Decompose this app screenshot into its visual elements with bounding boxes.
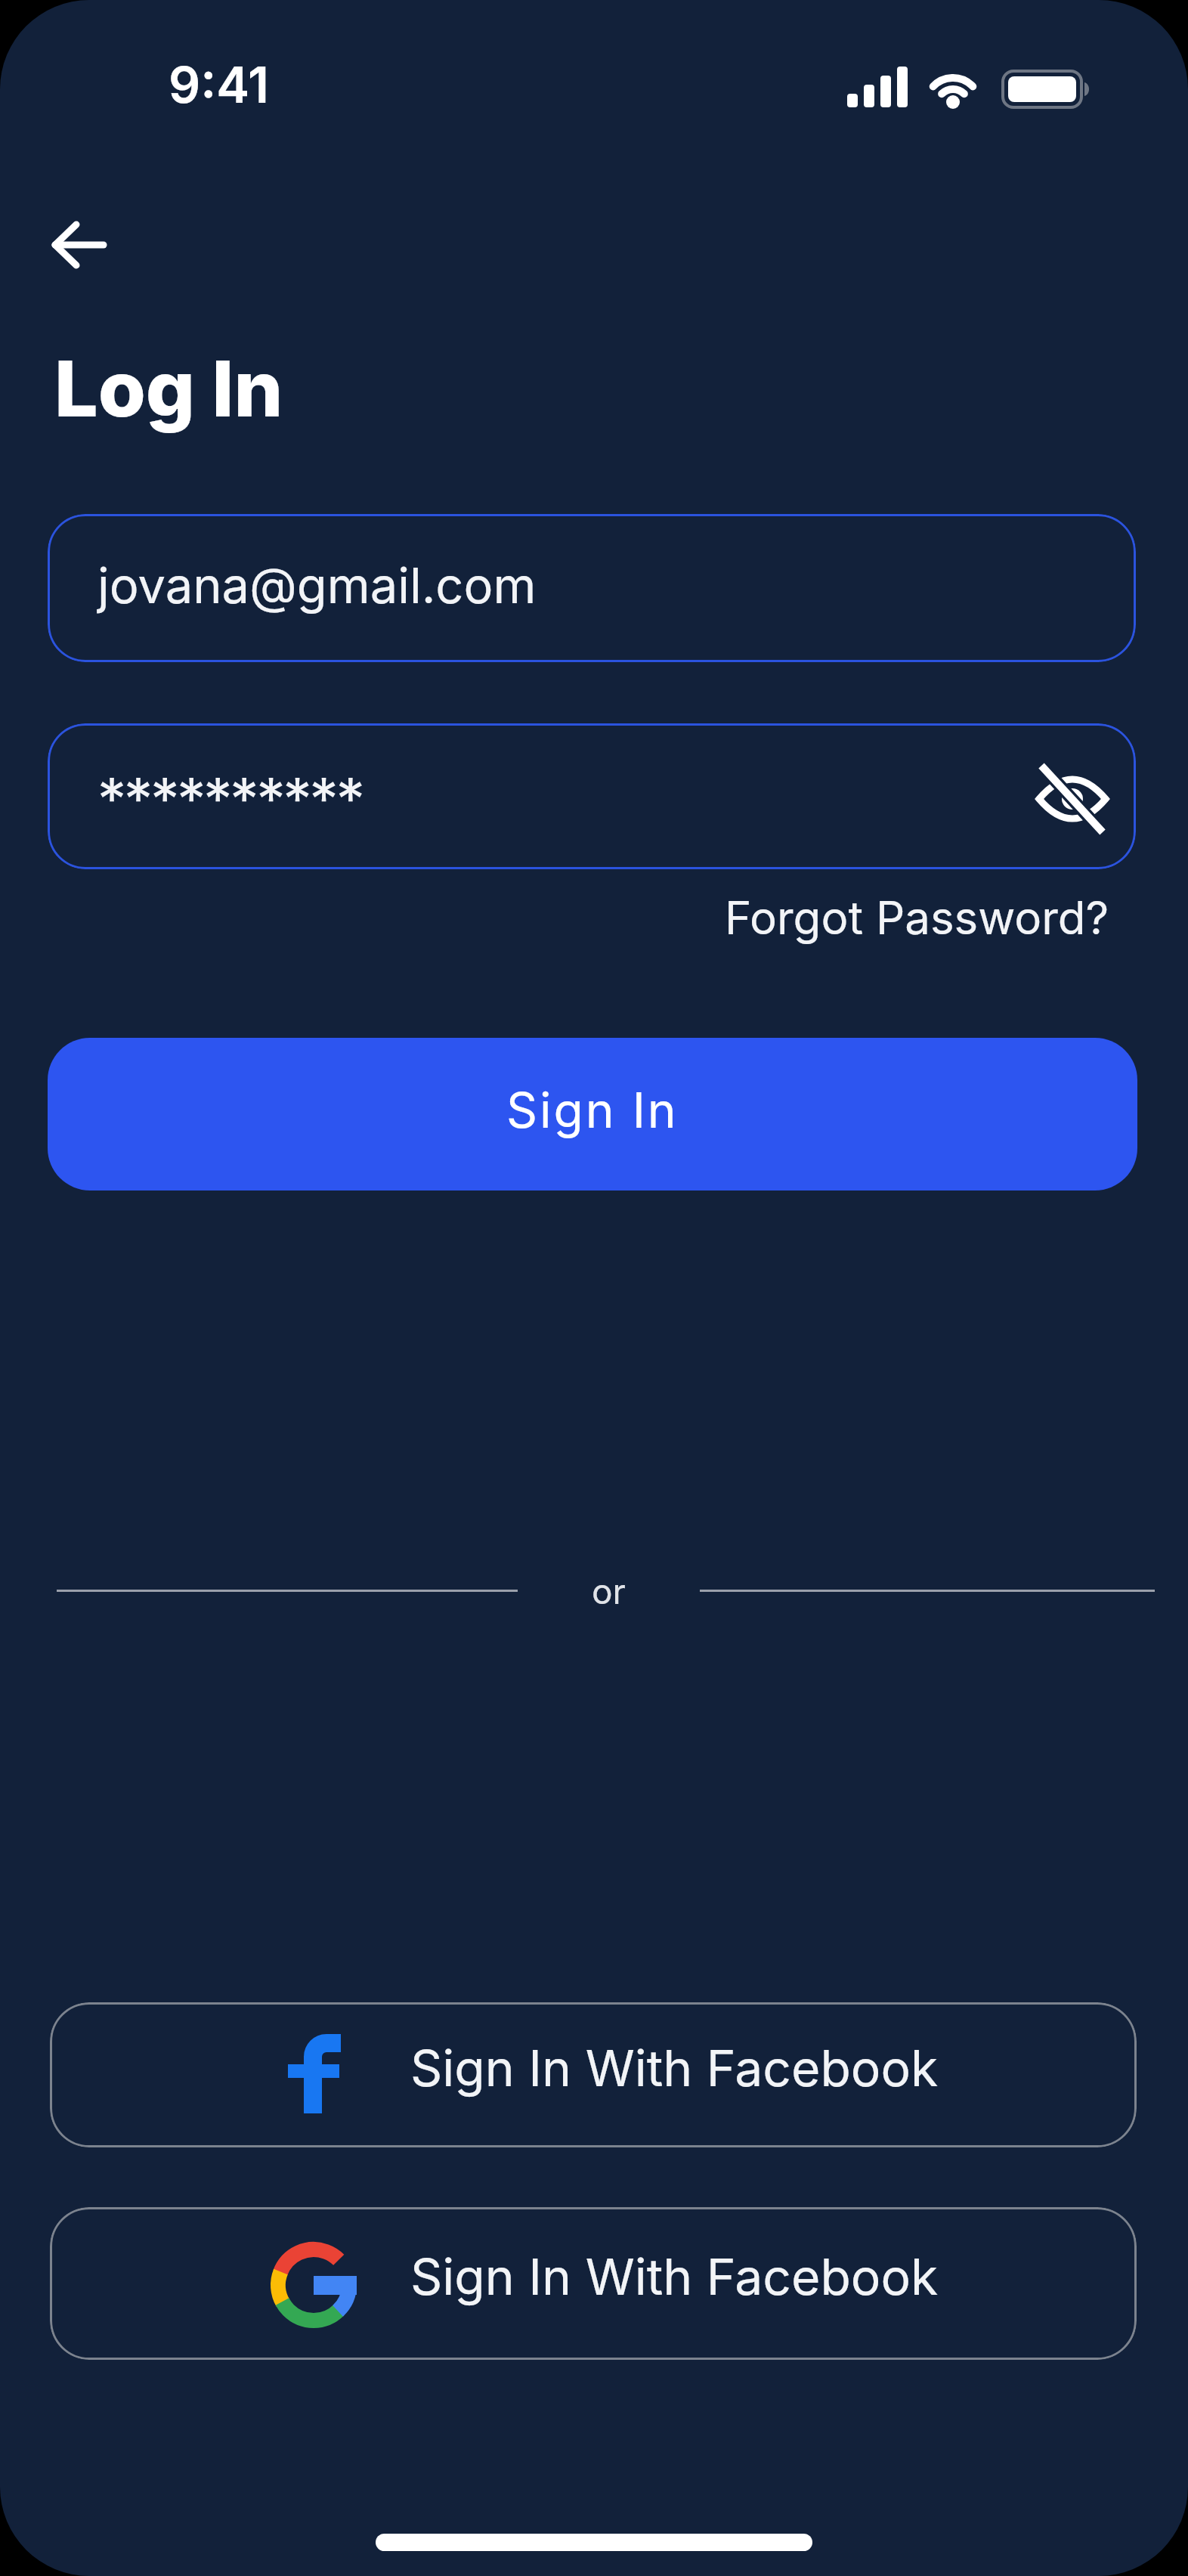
button[interactable]: Sign In With Facebook [50, 2207, 1137, 2360]
staticText: Sign In With Facebook [410, 2246, 939, 2307]
staticText: 9:41 [169, 54, 270, 115]
button[interactable]: Sign In With Facebook [50, 2002, 1137, 2147]
staticText: Sign In With Facebook [410, 2038, 939, 2098]
staticText: Sign In [506, 1081, 679, 1139]
staticText: or [592, 1570, 626, 1612]
button[interactable]: jovana@gmail.com [48, 514, 1136, 662]
button[interactable]: Forgot Password? [725, 890, 1109, 946]
staticText: ********** [97, 763, 363, 833]
staticText: jovana@gmail.com [97, 556, 537, 615]
button[interactable]: Sign In [48, 1038, 1137, 1190]
button[interactable] [1026, 748, 1124, 846]
button[interactable] [38, 206, 121, 284]
button[interactable]: ********** [48, 723, 1136, 869]
staticText: Log In [54, 342, 283, 435]
staticText: Forgot Password? [725, 890, 1109, 946]
